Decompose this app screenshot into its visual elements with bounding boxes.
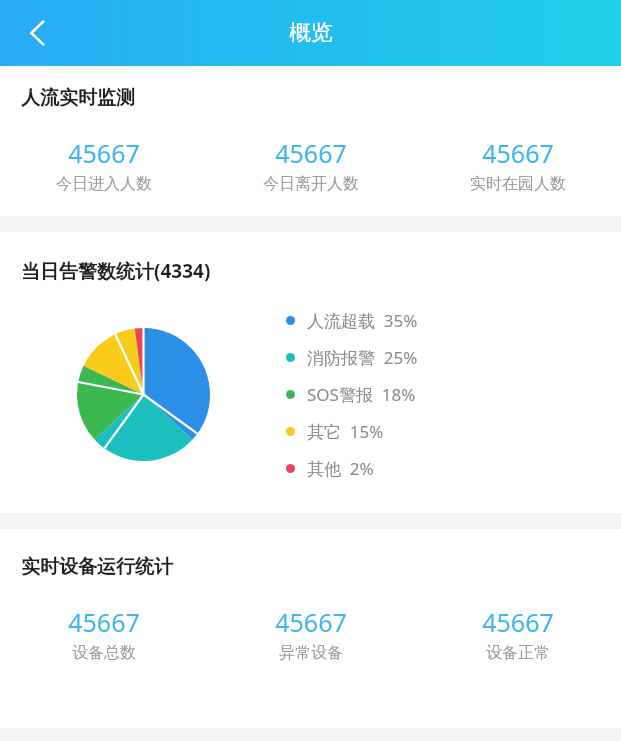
staticText: 其他 2%	[307, 457, 374, 480]
staticText: 当日告警数统计(4334)	[21, 258, 211, 284]
staticText: 概览	[289, 19, 333, 47]
staticText: 设备正常	[486, 643, 550, 663]
button[interactable]: 人流超载 35%	[286, 302, 621, 339]
button[interactable]: SOS警报 18%	[286, 376, 621, 413]
staticText: 45667	[275, 605, 347, 639]
staticText: 消防报警 25%	[307, 346, 418, 369]
staticText: SOS警报 18%	[307, 383, 416, 406]
button[interactable]: 45667	[207, 134, 414, 196]
button[interactable]: 45667	[414, 603, 621, 665]
button[interactable]: 45667	[0, 603, 207, 665]
staticText: 45667	[275, 136, 347, 170]
staticText: 实时在园人数	[470, 174, 566, 194]
button[interactable]: 45667	[207, 603, 414, 665]
staticText: 45667	[482, 136, 554, 170]
button[interactable]: 45667	[414, 134, 621, 196]
staticText: 今日离开人数	[263, 174, 359, 194]
staticText: 设备总数	[72, 643, 136, 663]
button[interactable]: 其他 2%	[286, 450, 621, 487]
staticText: 今日进入人数	[56, 174, 152, 194]
staticText: 实时设备运行统计	[21, 555, 173, 579]
button[interactable]: Back	[10, 5, 66, 61]
button[interactable]: 45667	[0, 134, 207, 196]
staticText: 45667	[482, 605, 554, 639]
staticText: 45667	[68, 605, 140, 639]
staticText: 人流实时监测	[21, 86, 135, 110]
button[interactable]: 其它 15%	[286, 413, 621, 450]
staticText: 异常设备	[279, 643, 343, 663]
staticText: 45667	[68, 136, 140, 170]
staticText: 人流超载 35%	[307, 309, 418, 332]
button[interactable]: 消防报警 25%	[286, 339, 621, 376]
staticText: 其它 15%	[307, 420, 384, 443]
